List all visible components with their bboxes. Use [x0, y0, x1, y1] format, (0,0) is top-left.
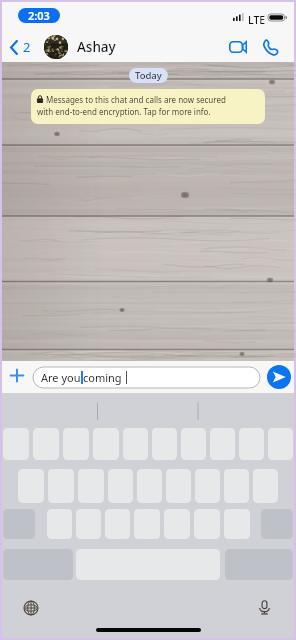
button[interactable]: [134, 509, 160, 539]
staticText: with end-to-end encryption. Tap for more…: [37, 106, 211, 117]
button[interactable]: [47, 509, 72, 539]
button[interactable]: Voice call: [256, 33, 284, 61]
button[interactable]: [105, 509, 130, 539]
button[interactable]: Messages to this chat and calls are now …: [31, 89, 265, 124]
button[interactable]: Send: [267, 365, 291, 389]
staticText: Are you: [41, 370, 81, 385]
staticText: Messages to this chat and calls are now …: [46, 94, 226, 105]
button[interactable]: Dictate: [254, 597, 275, 618]
button[interactable]: [76, 509, 101, 539]
staticText: coming: [83, 370, 122, 385]
button[interactable]: Today: [129, 68, 168, 83]
staticText: Ashay: [77, 38, 116, 56]
staticText: Today: [135, 69, 162, 82]
button[interactable]: Contact photo: [44, 35, 68, 59]
button[interactable]: Recording indicator 2:03: [18, 8, 60, 23]
button[interactable]: Change keyboard language: [20, 597, 41, 618]
staticText: LTE: [248, 13, 266, 24]
button[interactable]: [194, 509, 220, 539]
button[interactable]: Are you: [33, 367, 260, 388]
staticText: 2: [23, 38, 31, 56]
button[interactable]: [164, 509, 190, 539]
button[interactable]: Attach: [6, 364, 28, 386]
button[interactable]: Video call: [224, 33, 252, 61]
button[interactable]: Back to chats, 2 unread: [6, 36, 35, 58]
staticText: 2:03: [28, 8, 50, 23]
button[interactable]: [224, 509, 250, 539]
